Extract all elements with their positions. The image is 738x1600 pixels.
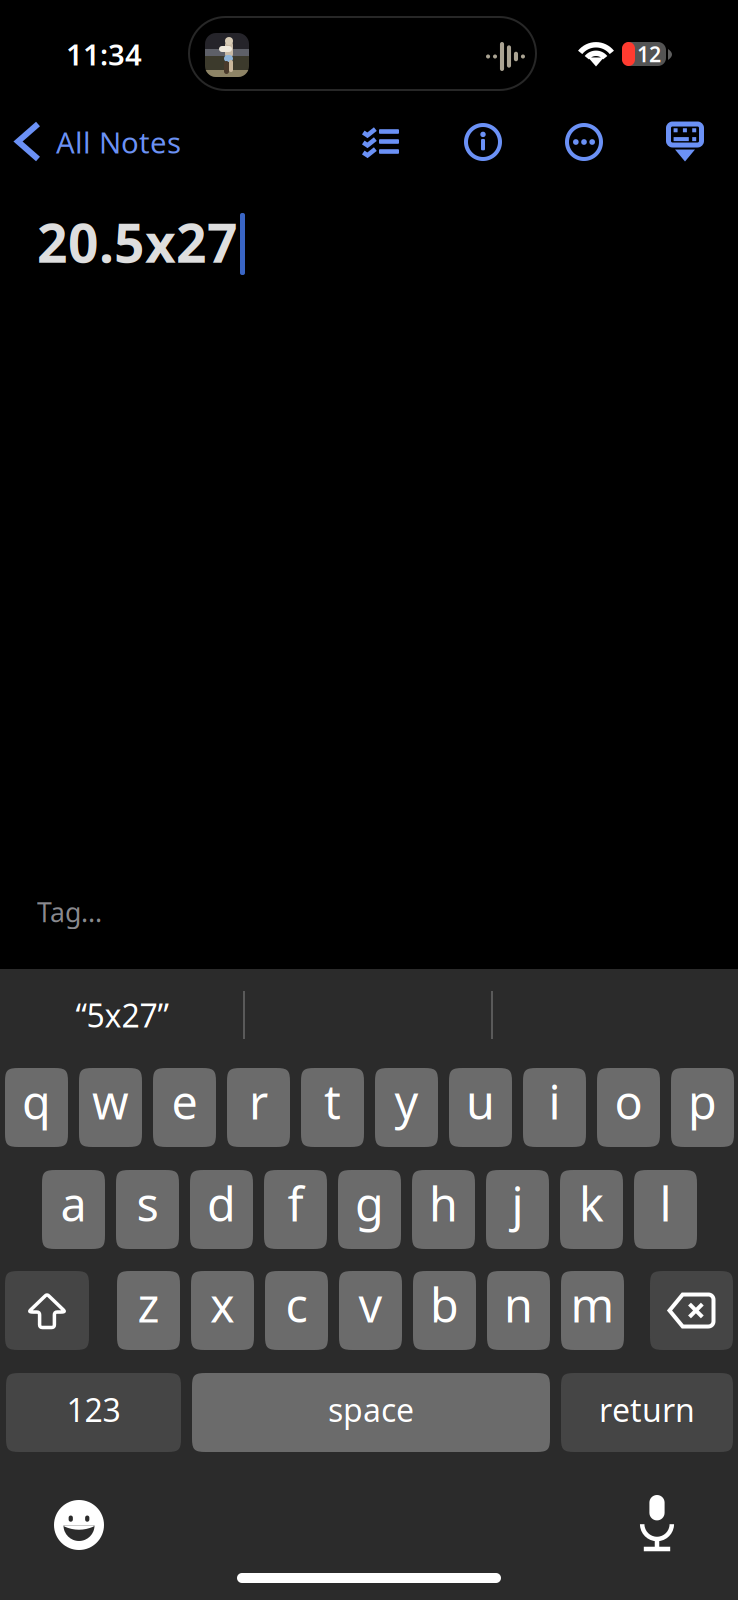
staticText: l bbox=[659, 1172, 671, 1234]
staticText: u bbox=[466, 1070, 495, 1132]
staticText: t bbox=[324, 1070, 341, 1132]
button[interactable]: x bbox=[191, 1271, 254, 1350]
button[interactable]: p bbox=[671, 1068, 734, 1147]
button[interactable]: Emoji bbox=[41, 1487, 117, 1563]
button[interactable]: g bbox=[338, 1170, 401, 1249]
button[interactable]: Checklist bbox=[349, 111, 413, 173]
staticText: q bbox=[22, 1070, 51, 1132]
staticText: a bbox=[60, 1172, 86, 1234]
button[interactable]: s bbox=[116, 1170, 179, 1249]
button[interactable]: n bbox=[487, 1271, 550, 1350]
button[interactable]: r bbox=[227, 1068, 290, 1147]
button[interactable]: v bbox=[339, 1271, 402, 1350]
button[interactable]: z bbox=[117, 1271, 180, 1350]
staticText: 123 bbox=[66, 1388, 120, 1431]
staticText: 20.5x27 bbox=[37, 207, 238, 277]
staticText: 12 bbox=[637, 40, 661, 68]
staticText: c bbox=[285, 1273, 307, 1335]
staticText: n bbox=[504, 1273, 533, 1335]
staticText: g bbox=[355, 1172, 384, 1234]
button[interactable]: 123 bbox=[6, 1373, 181, 1452]
staticText: x bbox=[210, 1273, 235, 1335]
button[interactable]: Hide Keyboard bbox=[653, 111, 717, 173]
staticText: j bbox=[511, 1172, 523, 1234]
button[interactable]: u bbox=[449, 1068, 512, 1147]
button[interactable]: y bbox=[375, 1068, 438, 1147]
button[interactable]: d bbox=[190, 1170, 253, 1249]
staticText: “5x27” bbox=[75, 994, 168, 1036]
staticText: Tag... bbox=[37, 894, 102, 930]
button[interactable]: Dictate bbox=[619, 1485, 695, 1561]
staticText: d bbox=[207, 1172, 236, 1234]
button[interactable]: q bbox=[5, 1068, 68, 1147]
staticText: z bbox=[137, 1273, 159, 1335]
staticText: space bbox=[328, 1388, 414, 1431]
button[interactable]: o bbox=[597, 1068, 660, 1147]
button[interactable]: l bbox=[634, 1170, 697, 1249]
button[interactable]: Delete bbox=[650, 1271, 733, 1350]
staticText: v bbox=[358, 1273, 382, 1335]
staticText: 11:34 bbox=[66, 34, 142, 73]
staticText: o bbox=[614, 1070, 642, 1132]
button[interactable]: t bbox=[301, 1068, 364, 1147]
button[interactable]: e bbox=[153, 1068, 216, 1147]
button[interactable]: h bbox=[412, 1170, 475, 1249]
button[interactable]: k bbox=[560, 1170, 623, 1249]
staticText: b bbox=[430, 1273, 459, 1335]
button[interactable]: c bbox=[265, 1271, 328, 1350]
staticText: k bbox=[579, 1172, 604, 1234]
staticText: All Notes bbox=[56, 122, 181, 161]
button[interactable]: return bbox=[561, 1373, 733, 1452]
staticText: w bbox=[92, 1070, 129, 1132]
button[interactable]: Info bbox=[451, 111, 515, 173]
staticText: e bbox=[171, 1070, 197, 1132]
button[interactable]: space bbox=[192, 1373, 550, 1452]
button[interactable]: i bbox=[523, 1068, 586, 1147]
button[interactable]: a bbox=[42, 1170, 105, 1249]
staticText: r bbox=[249, 1070, 268, 1132]
staticText: return bbox=[599, 1388, 695, 1431]
button[interactable]: All Notes bbox=[12, 111, 282, 173]
button[interactable]: “5x27” bbox=[0, 980, 244, 1050]
staticText: p bbox=[688, 1070, 717, 1132]
staticText: i bbox=[548, 1070, 560, 1132]
staticText: h bbox=[429, 1172, 458, 1234]
button[interactable]: j bbox=[486, 1170, 549, 1249]
staticText: m bbox=[570, 1273, 614, 1335]
button[interactable]: b bbox=[413, 1271, 476, 1350]
staticText: f bbox=[287, 1172, 303, 1234]
button[interactable]: m bbox=[561, 1271, 624, 1350]
staticText: s bbox=[136, 1172, 158, 1234]
button[interactable]: Shift bbox=[5, 1271, 89, 1350]
staticText: y bbox=[394, 1070, 418, 1132]
button[interactable]: f bbox=[264, 1170, 327, 1249]
button[interactable]: More bbox=[552, 111, 616, 173]
button[interactable]: w bbox=[79, 1068, 142, 1147]
